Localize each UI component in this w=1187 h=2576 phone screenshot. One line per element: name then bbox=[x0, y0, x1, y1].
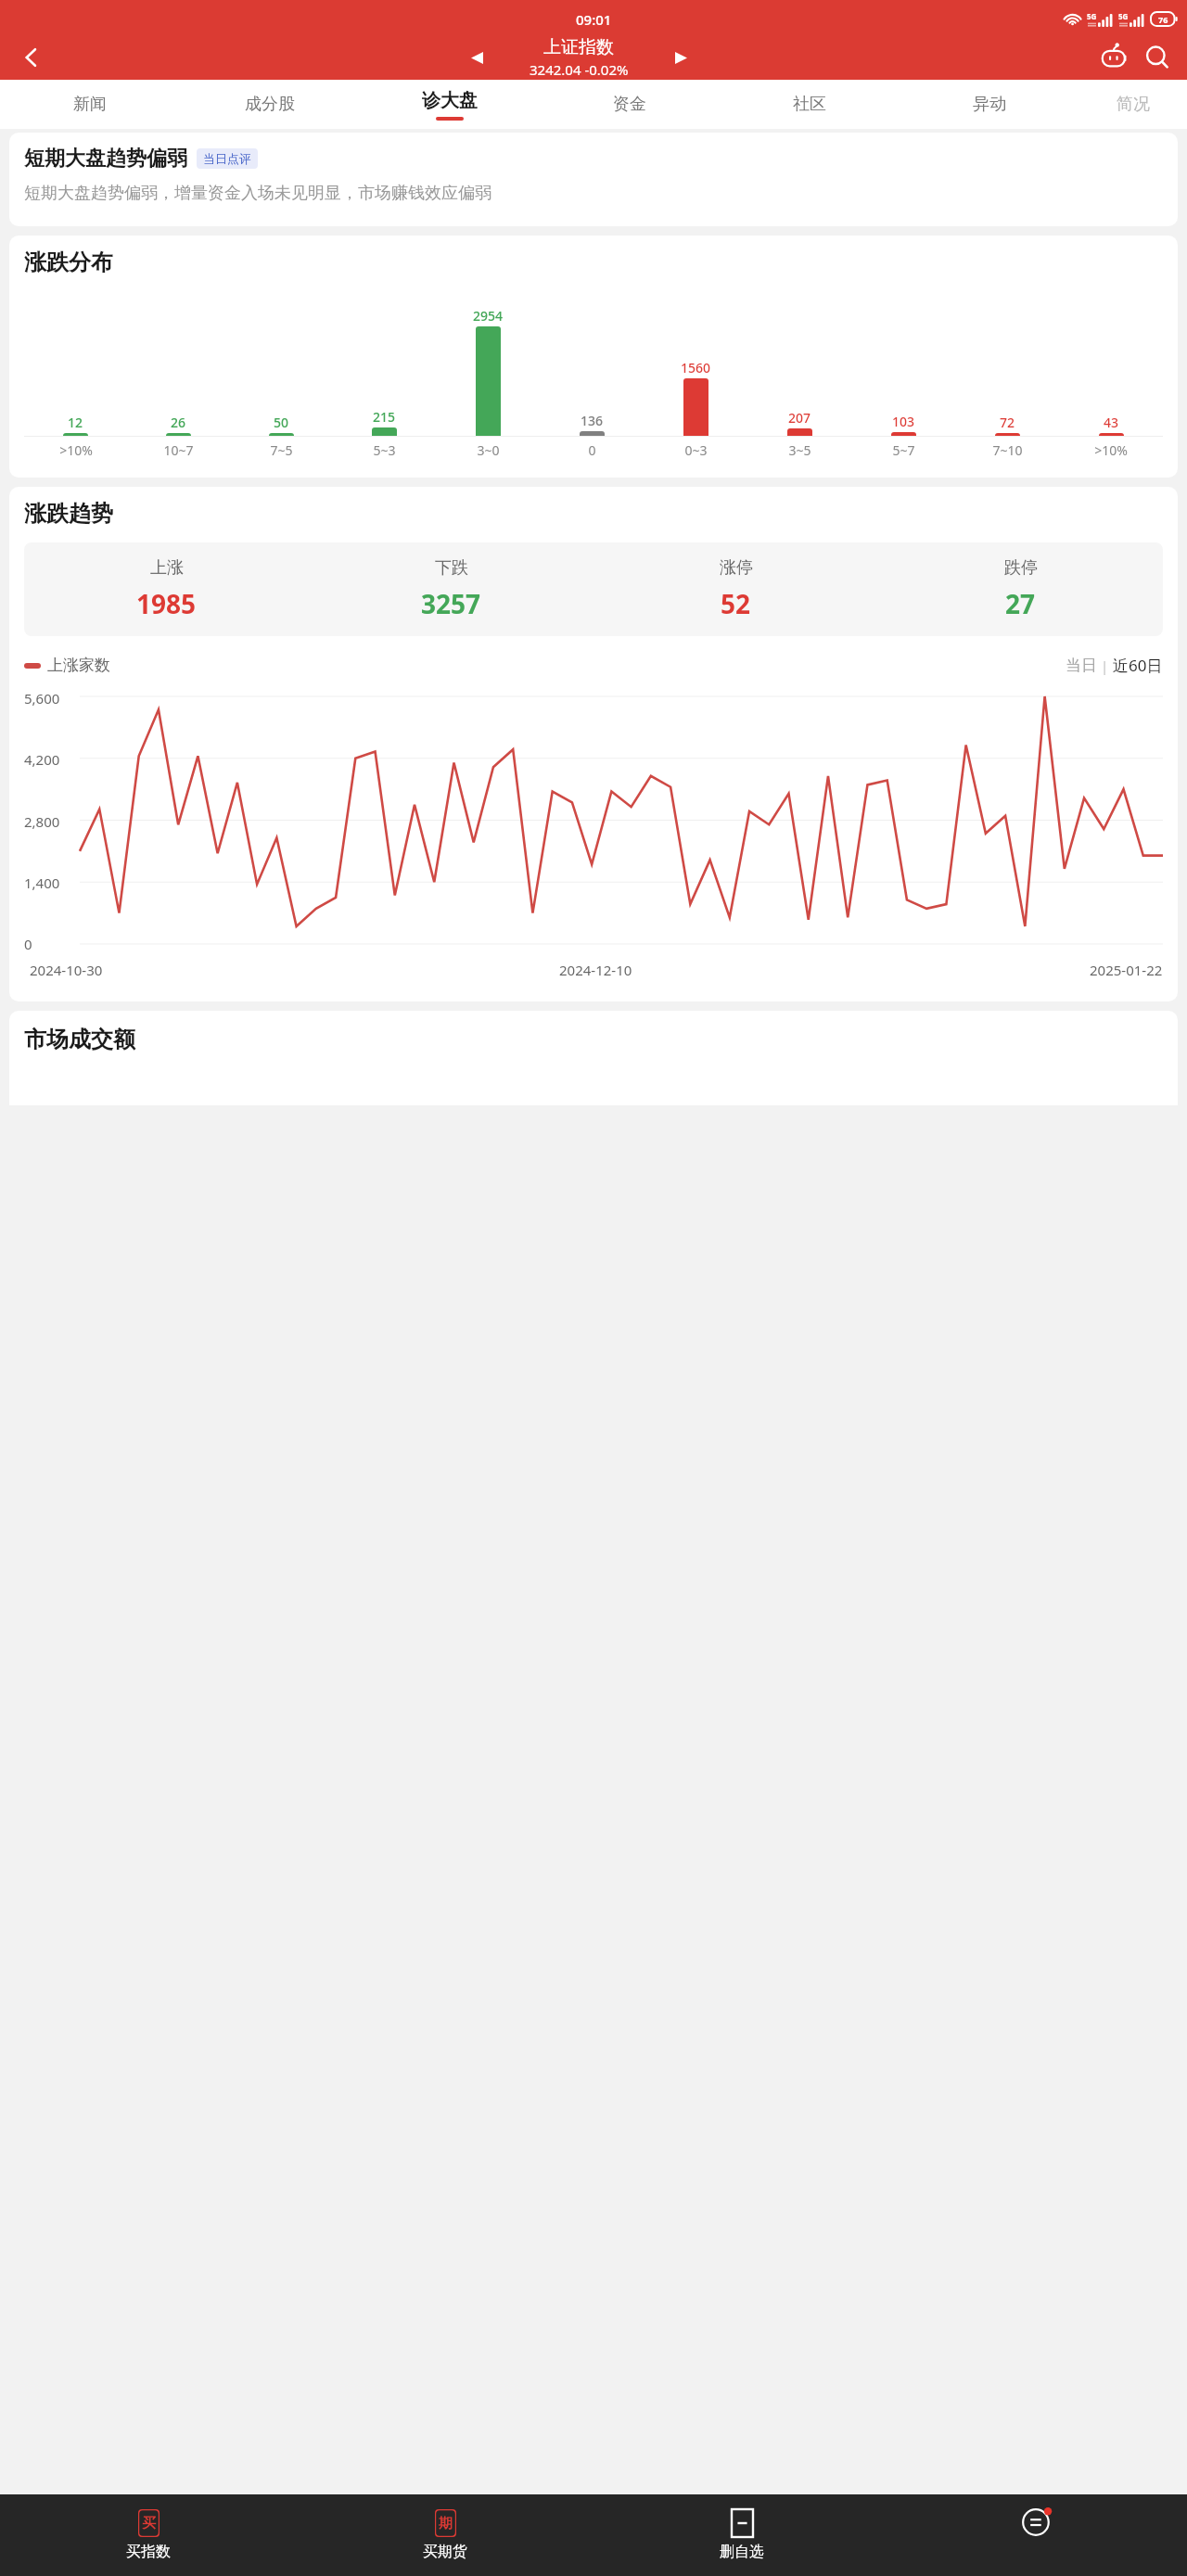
staticText: 当日点评 bbox=[203, 151, 251, 166]
staticText: 7~5 bbox=[270, 441, 293, 459]
staticText: 涨停 bbox=[720, 557, 753, 579]
staticText: 2025-01-22 bbox=[1090, 961, 1163, 979]
button[interactable]: 上证指数 bbox=[491, 36, 667, 79]
button[interactable]: 72 bbox=[955, 414, 1059, 436]
staticText: 50 bbox=[274, 414, 289, 431]
staticText: 4,200 bbox=[24, 750, 60, 769]
staticText: 0 bbox=[24, 935, 32, 953]
button[interactable]: 1560 bbox=[644, 359, 747, 436]
staticText: 72 bbox=[1000, 414, 1015, 431]
button[interactable]: Next bbox=[667, 44, 695, 71]
staticText: 0~3 bbox=[684, 441, 708, 459]
staticText: 买指数 bbox=[126, 2543, 171, 2561]
button[interactable]: 涨跌分布 bbox=[9, 236, 1178, 478]
staticText: 社区 bbox=[793, 94, 826, 115]
staticText: 涨跌趋势 bbox=[24, 500, 113, 528]
button[interactable]: 新闻 bbox=[0, 80, 180, 129]
staticText: 简况 bbox=[1117, 94, 1150, 115]
staticText: 12 bbox=[68, 414, 83, 431]
button[interactable]: 删自选 bbox=[593, 2494, 890, 2576]
staticText: 诊大盘 bbox=[422, 89, 478, 112]
staticText: 10~7 bbox=[163, 441, 194, 459]
staticText: 市场成交额 bbox=[24, 1026, 135, 1053]
button[interactable]: 43 bbox=[1059, 414, 1163, 436]
button[interactable]: 简况 bbox=[1079, 80, 1187, 129]
staticText: 2954 bbox=[473, 307, 504, 325]
button[interactable]: 2954 bbox=[436, 307, 540, 436]
button[interactable]: 诊大盘 bbox=[360, 80, 540, 129]
button[interactable]: 215 bbox=[333, 408, 436, 436]
staticText: 5G bbox=[1118, 11, 1129, 21]
staticText: 下跌 bbox=[435, 557, 468, 579]
staticText: 7~10 bbox=[992, 441, 1023, 459]
button[interactable]: 短期大盘趋势偏弱 bbox=[9, 133, 1178, 226]
staticText: 0 bbox=[588, 441, 596, 459]
staticText: 215 bbox=[373, 408, 396, 426]
staticText: 短期大盘趋势偏弱，增量资金入场未见明显，市场赚钱效应偏弱 bbox=[24, 183, 491, 204]
staticText: 5~3 bbox=[373, 441, 396, 459]
staticText: 5~7 bbox=[892, 441, 915, 459]
staticText: 136 bbox=[581, 412, 604, 429]
button[interactable]: AI Assistant bbox=[1094, 37, 1135, 78]
button[interactable]: 136 bbox=[540, 412, 644, 436]
staticText: >10% bbox=[1094, 441, 1128, 459]
staticText: 2,800 bbox=[24, 812, 60, 831]
staticText: 买 bbox=[142, 2515, 156, 2532]
staticText: 上涨家数 bbox=[47, 656, 110, 675]
staticText: 1,400 bbox=[24, 874, 60, 892]
staticText: 2024-12-10 bbox=[559, 961, 632, 979]
staticText: 上证指数 bbox=[543, 36, 614, 58]
staticText: 2024-10-30 bbox=[30, 961, 103, 979]
staticText: 1560 bbox=[681, 359, 711, 376]
staticText: 5G bbox=[1087, 11, 1097, 21]
staticText: 短期大盘趋势偏弱 bbox=[24, 146, 187, 172]
staticText: 09:01 bbox=[576, 10, 612, 29]
button[interactable]: 103 bbox=[851, 413, 955, 436]
staticText: 近60日 bbox=[1113, 655, 1163, 676]
button[interactable]: 当日 bbox=[1066, 656, 1097, 675]
staticText: 涨跌分布 bbox=[24, 249, 113, 276]
staticText: 上涨 bbox=[150, 557, 184, 579]
staticText: 26 bbox=[171, 414, 186, 431]
staticText: 52 bbox=[721, 586, 751, 621]
staticText: 新闻 bbox=[73, 94, 107, 115]
button[interactable]: 社区 bbox=[720, 80, 900, 129]
staticText: 3257 bbox=[421, 586, 481, 621]
staticText: 76 bbox=[1158, 14, 1168, 25]
staticText: 3~0 bbox=[477, 441, 500, 459]
staticText: 异动 bbox=[973, 94, 1006, 115]
button[interactable]: Back bbox=[0, 34, 63, 80]
button[interactable]: 涨跌趋势 bbox=[9, 487, 1178, 1001]
button[interactable]: More bbox=[890, 2494, 1187, 2576]
staticText: 期 bbox=[439, 2515, 453, 2532]
button[interactable]: 异动 bbox=[900, 80, 1079, 129]
staticText: 207 bbox=[788, 409, 811, 427]
button[interactable]: 资金 bbox=[540, 80, 720, 129]
staticText: 103 bbox=[892, 413, 915, 430]
button[interactable]: 207 bbox=[747, 409, 851, 436]
staticText: 跌停 bbox=[1004, 557, 1038, 579]
button[interactable]: 近60日 bbox=[1113, 655, 1163, 676]
button[interactable]: 市场成交额 bbox=[9, 1011, 1178, 1105]
button[interactable]: 26 bbox=[127, 414, 230, 436]
staticText: 43 bbox=[1104, 414, 1119, 431]
button[interactable]: 50 bbox=[230, 414, 333, 436]
staticText: 5,600 bbox=[24, 689, 60, 708]
button[interactable]: Previous bbox=[463, 44, 491, 71]
staticText: 当日 bbox=[1066, 656, 1097, 675]
staticText: 27 bbox=[1005, 586, 1036, 621]
staticText: | bbox=[1097, 657, 1113, 675]
staticText: 成分股 bbox=[245, 94, 295, 115]
button[interactable]: 买 bbox=[0, 2494, 297, 2576]
button[interactable]: 期 bbox=[297, 2494, 593, 2576]
staticText: 删自选 bbox=[720, 2543, 764, 2561]
staticText: 买期货 bbox=[423, 2543, 467, 2561]
staticText: 3242.04 -0.02% bbox=[530, 60, 629, 79]
button[interactable]: 12 bbox=[24, 414, 127, 436]
staticText: 3~5 bbox=[788, 441, 811, 459]
staticText: 资金 bbox=[613, 94, 646, 115]
button[interactable]: 成分股 bbox=[180, 80, 360, 129]
staticText: >10% bbox=[59, 441, 93, 459]
button[interactable]: Search bbox=[1135, 35, 1180, 80]
staticText: 1985 bbox=[136, 586, 197, 621]
